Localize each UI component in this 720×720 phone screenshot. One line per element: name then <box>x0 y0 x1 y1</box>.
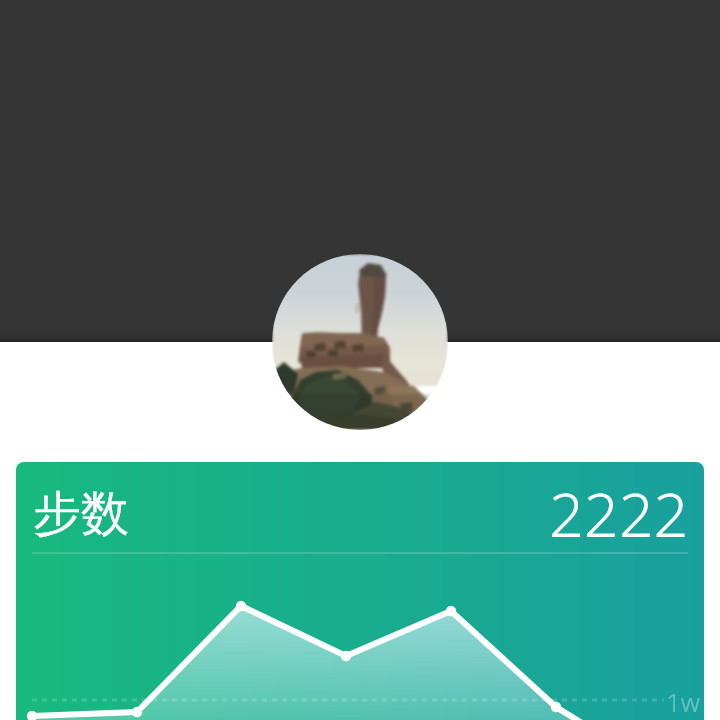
button[interactable]: 步数 <box>16 462 704 720</box>
staticText: 2222 <box>549 472 689 555</box>
staticText: 步数 <box>33 484 129 544</box>
staticText: 1w <box>666 684 700 719</box>
button[interactable]: Profile photo <box>272 254 448 430</box>
